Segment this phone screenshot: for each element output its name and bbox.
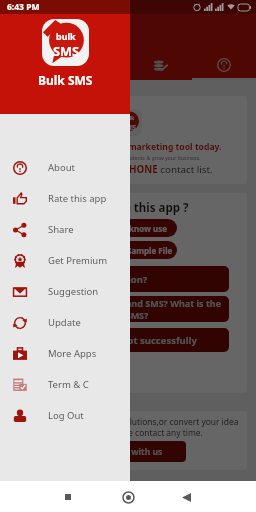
button[interactable]: Connect with us [71,441,186,462]
button[interactable]: Help [192,50,256,80]
staticText: How to registration and SMS? What is the [36,297,221,309]
button[interactable]: More Apps [0,338,130,369]
button[interactable]: Videos to know use [80,219,177,237]
button[interactable]: Recents [55,484,81,510]
staticText: Advertise your product and students & gr… [56,154,201,161]
staticText: bulk [123,115,135,122]
staticText: Term & C [48,378,89,391]
button[interactable]: About [0,152,130,183]
staticText: Share [48,223,74,236]
button[interactable]: Log Out [0,400,130,431]
staticText: How to do registration? [36,273,148,286]
button[interactable]: How to do registration? [28,266,229,292]
button[interactable]: Rate this app [0,183,130,214]
button[interactable]: Compose [0,50,64,80]
staticText: Rate this app [48,192,107,205]
staticText: SMS [121,122,136,132]
staticText: 6:43 PM [7,1,40,13]
staticText: Videos to know use [90,223,167,234]
staticText: Get Premium [48,254,108,267]
staticText: How to use this app ? [67,200,189,216]
staticText: Log Out [48,409,84,422]
button[interactable]: Get Premium [0,245,130,276]
staticText: Suggestion [48,285,99,298]
staticText: Bulk SMS [38,72,93,88]
button[interactable]: Contacts [128,50,192,80]
staticText: into reality. Feel free contact any time… [53,427,203,438]
staticText: Why SMS sending not successfully [36,334,197,347]
button[interactable]: Home [115,484,141,510]
button[interactable]: Update [0,307,130,338]
staticText: Update [48,316,81,329]
staticText: Use EXCEL list or PHONE contact list. [43,163,213,176]
staticText: More Apps [48,347,97,360]
button[interactable]: Why SMS sending not successfully [28,328,229,352]
staticText: About [48,161,75,174]
staticText: bulk [56,30,76,42]
button[interactable]: Back [173,484,199,510]
staticText: cost of sending one SMS? [36,309,149,321]
staticText: Download Sample File [85,245,173,256]
staticText: Connect with us [94,446,163,458]
staticText: SMS [53,42,79,59]
button[interactable]: How to registration and SMS? What is the [28,296,229,322]
button[interactable]: Download Sample File [80,241,177,259]
staticText: We are provide customize solutions,or co… [17,416,239,427]
button[interactable]: Reports [64,50,128,80]
button[interactable]: Share [0,214,130,245]
button[interactable]: Term & C [0,369,130,400]
button[interactable]: Suggestion [0,276,130,307]
staticText: Bulk SMS is the direct marketing tool to… [34,141,222,153]
